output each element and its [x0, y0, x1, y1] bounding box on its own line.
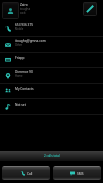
staticText: Friapp	[15, 56, 25, 60]
button[interactable]: itoughq@gmna.com	[0, 37, 103, 53]
staticText: 653 936 375	[15, 23, 34, 27]
staticText: 2 calls total	[44, 154, 60, 158]
staticText: Home	[15, 74, 23, 78]
staticText: Mobile	[15, 27, 24, 31]
staticText: tougha	[20, 7, 31, 11]
staticText: itoughq@gmna.com	[15, 39, 46, 43]
button[interactable]: Dierence 90	[0, 68, 103, 84]
staticText: Zairo	[20, 3, 28, 7]
button[interactable]: SMS	[53, 166, 101, 180]
staticText: Not set	[15, 103, 26, 107]
button[interactable]: My Contacts	[0, 83, 103, 99]
staticText: Other	[15, 43, 23, 47]
button[interactable]: 653 936 375	[0, 21, 103, 37]
button[interactable]: Edit contact	[83, 2, 97, 16]
button[interactable]: Friapp	[0, 52, 103, 68]
staticText: ooit	[20, 11, 26, 15]
button[interactable]: Not set	[0, 99, 103, 115]
button[interactable]: 2 calls total	[0, 151, 103, 161]
staticText: SMS	[77, 172, 84, 176]
button[interactable]: Call	[2, 166, 50, 180]
staticText: Call	[27, 172, 33, 176]
staticText: Dierence 90	[15, 70, 33, 74]
staticText: My Contacts	[15, 87, 34, 91]
button[interactable]: Contact photo	[2, 2, 19, 19]
